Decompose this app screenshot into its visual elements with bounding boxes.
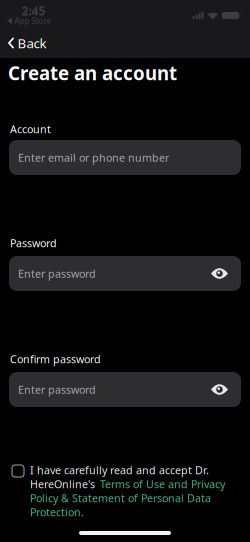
button[interactable]: Enter password	[9, 256, 241, 291]
staticText: Confirm password	[10, 352, 101, 366]
button[interactable]: Enter password	[9, 372, 241, 407]
staticText: 2:45	[21, 3, 45, 19]
staticText: Enter password	[18, 266, 96, 281]
staticText: HereOnline's	[30, 477, 98, 491]
staticText: Enter email or phone number	[18, 150, 169, 165]
staticText: Policy & Statement of Personal Data	[30, 491, 211, 505]
staticText: Terms of Use and Privacy	[100, 477, 225, 491]
staticText: I have carefully read and accept Dr.	[30, 463, 209, 477]
button[interactable]: I have carefully read and accept Dr.	[0, 465, 250, 517]
staticText: App Store	[14, 15, 51, 26]
button[interactable]: Enter email or phone number	[9, 140, 241, 175]
staticText: Protection.	[30, 505, 84, 519]
staticText: Back	[17, 34, 46, 52]
staticText: Create an account	[8, 61, 177, 85]
staticText: Password	[10, 236, 57, 250]
button[interactable]: Back	[0, 34, 46, 52]
staticText: Account	[10, 122, 51, 136]
staticText: Enter password	[18, 382, 96, 397]
